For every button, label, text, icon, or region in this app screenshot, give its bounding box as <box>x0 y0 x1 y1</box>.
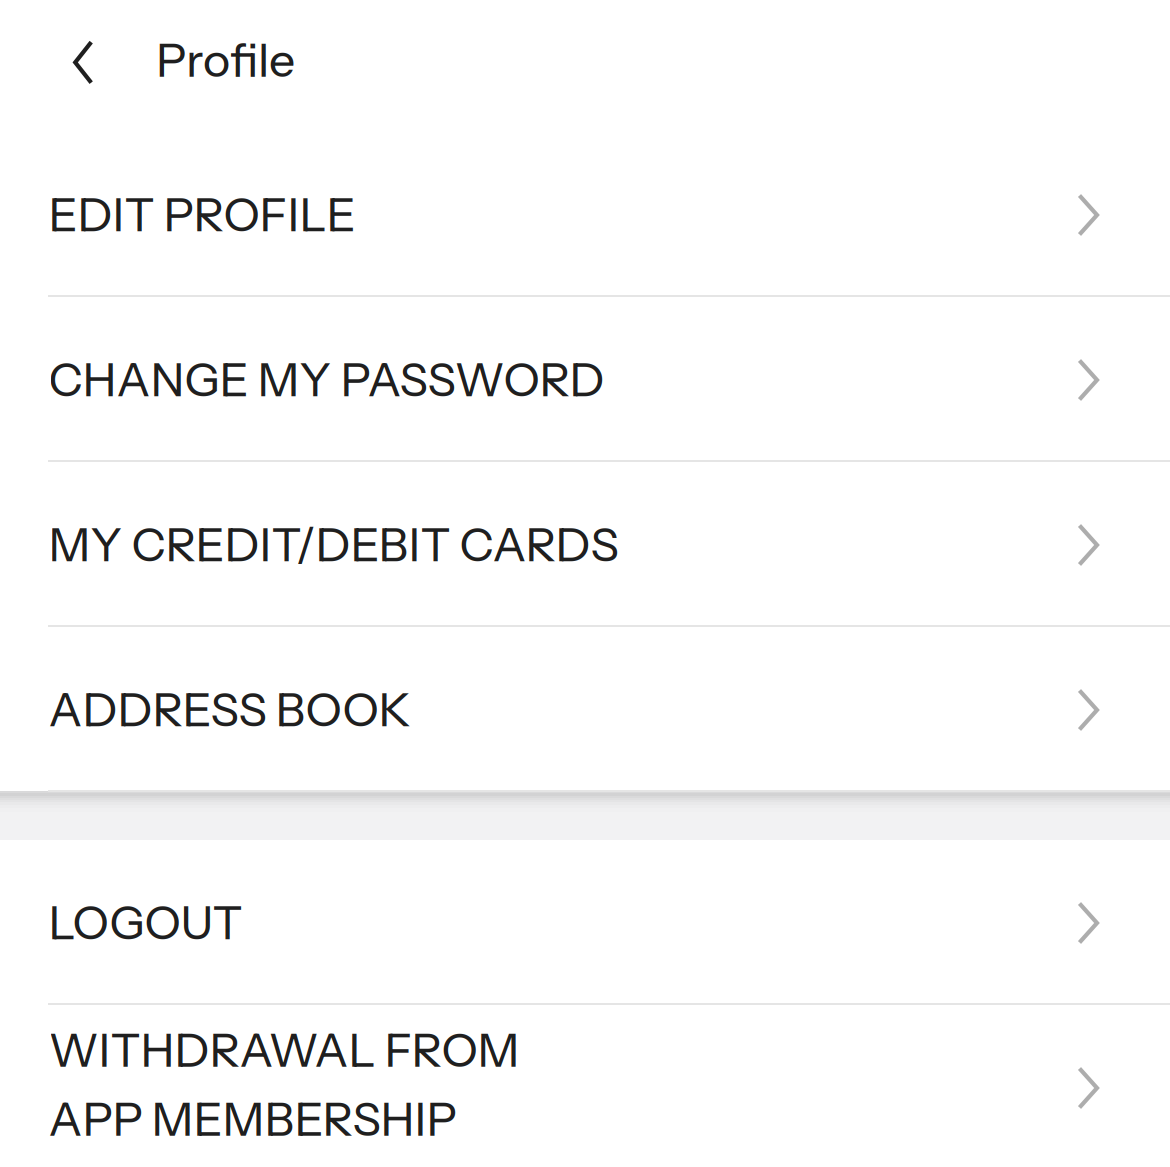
staticText: MY CREDIT/DEBIT CARDS <box>49 516 619 573</box>
button[interactable]: EDIT PROFILE <box>0 131 1170 296</box>
button[interactable]: CHANGE MY PASSWORD <box>0 296 1170 461</box>
button[interactable]: WITHDRAWAL FROM <box>0 1005 1170 1167</box>
staticText: APP MEMBERSHIP <box>49 1091 457 1147</box>
button[interactable]: MY CREDIT/DEBIT CARDS <box>0 461 1170 626</box>
staticText: ADDRESS BOOK <box>49 681 411 738</box>
staticText: WITHDRAWAL FROM <box>49 1022 520 1078</box>
staticText: EDIT PROFILE <box>49 186 356 243</box>
button[interactable]: LOGOUT <box>0 840 1170 1005</box>
staticText: CHANGE MY PASSWORD <box>49 351 605 408</box>
button[interactable]: ADDRESS BOOK <box>0 626 1170 791</box>
staticText: LOGOUT <box>49 894 243 951</box>
button[interactable]: Back <box>0 0 117 102</box>
staticText: Profile <box>156 32 295 88</box>
